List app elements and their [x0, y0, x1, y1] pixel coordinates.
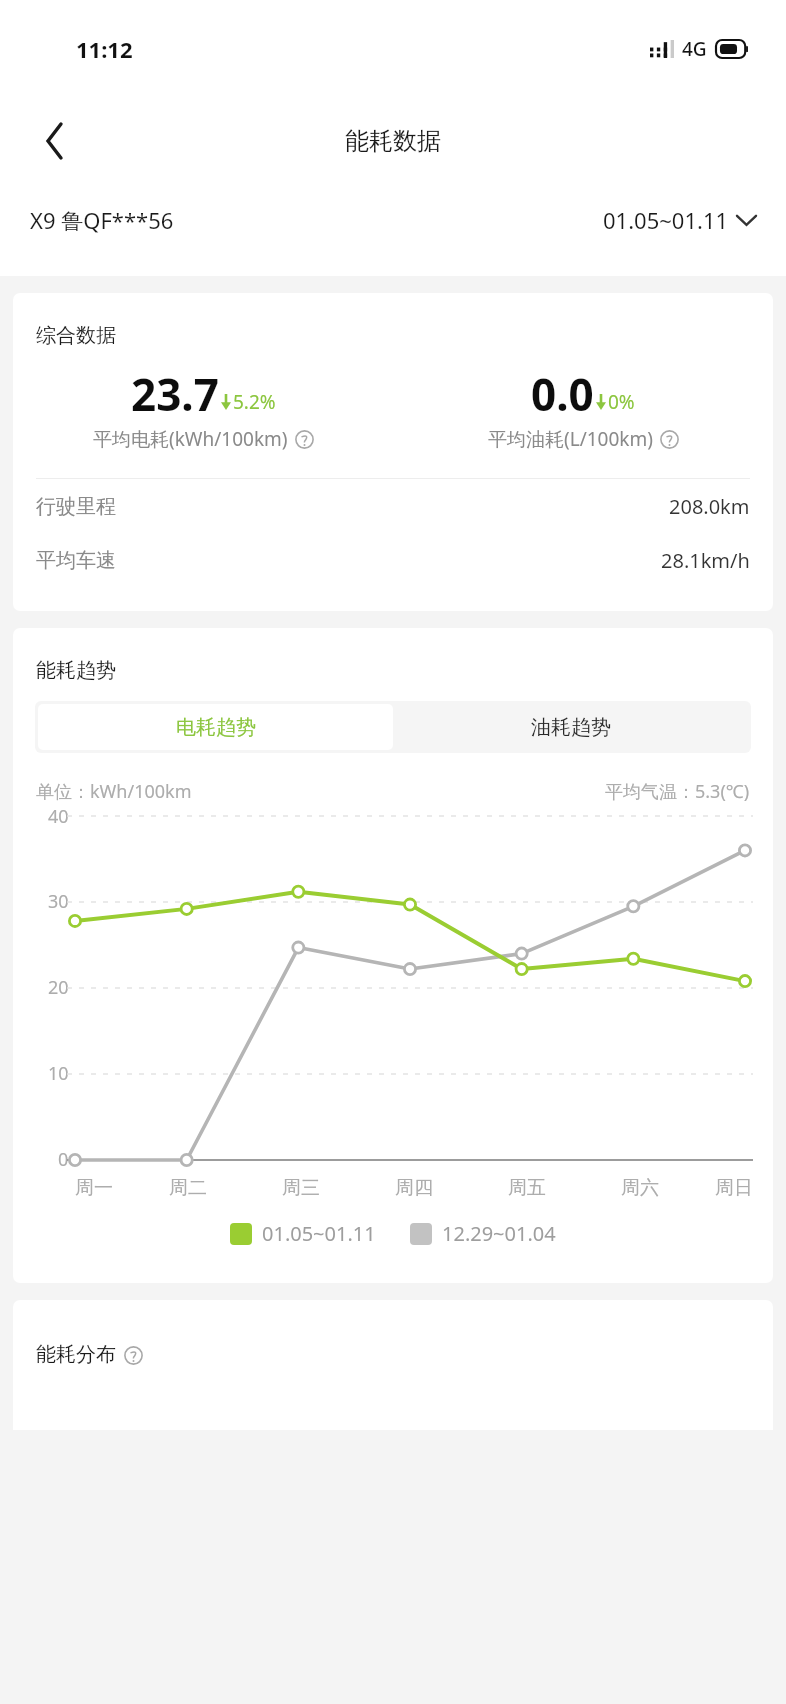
button[interactable]: 说明 [294, 429, 314, 449]
staticText: 23.7 [131, 364, 219, 424]
staticText: 208.0km [669, 493, 750, 520]
staticText: 综合数据 [36, 323, 116, 348]
staticText: 10 [48, 1061, 69, 1086]
staticText: 0% [608, 389, 635, 415]
staticText: 电耗趋势 [176, 715, 256, 740]
staticText: 40 [48, 804, 69, 829]
staticText: 0 [58, 1147, 69, 1172]
staticText: 能耗分布 [36, 1342, 116, 1367]
staticText: 01.05~01.11 [262, 1220, 376, 1247]
staticText: 4G [682, 36, 707, 62]
staticText: 5.2% [233, 389, 276, 415]
staticText: 周日 [715, 1176, 753, 1200]
staticText: 平均气温：5.3(℃) [605, 779, 750, 804]
staticText: 周六 [621, 1176, 659, 1200]
staticText: 油耗趋势 [531, 715, 611, 740]
button[interactable]: 油耗趋势 [393, 704, 748, 750]
button[interactable]: 说明 [123, 1345, 143, 1365]
staticText: 0.0 [531, 364, 594, 424]
button[interactable]: Back [26, 112, 84, 170]
staticText: 01.05~01.11 [603, 205, 729, 235]
button[interactable]: 电耗趋势 [38, 704, 393, 750]
staticText: 28.1km/h [661, 547, 750, 574]
staticText: 行驶里程 [36, 494, 116, 519]
staticText: 12.29~01.04 [442, 1220, 556, 1247]
staticText: 能耗趋势 [36, 658, 116, 683]
staticText: 11:12 [76, 34, 133, 64]
staticText: 周五 [508, 1176, 546, 1200]
staticText: 平均油耗(L/100km) [488, 426, 653, 452]
staticText: 周一 [75, 1176, 113, 1200]
staticText: 20 [48, 975, 69, 1000]
staticText: 单位：kWh/100km [36, 779, 192, 804]
button[interactable]: 01.05~01.11 [603, 205, 756, 235]
staticText: 平均电耗(kWh/100km) [93, 426, 288, 452]
staticText: 周二 [169, 1176, 207, 1200]
button[interactable]: 说明 [659, 429, 679, 449]
staticText: X9 鲁QF***56 [30, 205, 174, 235]
staticText: 能耗数据 [345, 126, 441, 156]
staticText: 30 [48, 889, 69, 914]
staticText: 平均车速 [36, 548, 116, 573]
staticText: 周四 [395, 1176, 433, 1200]
staticText: 周三 [282, 1176, 320, 1200]
